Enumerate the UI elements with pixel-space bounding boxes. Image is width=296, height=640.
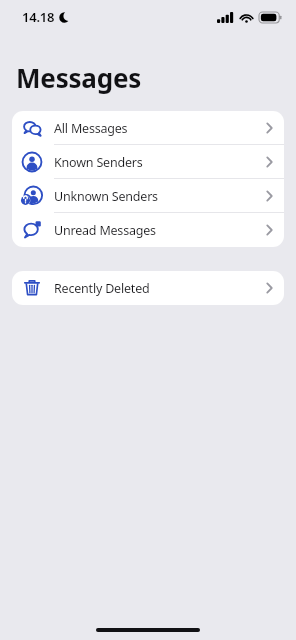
button[interactable]: Unknown Senders — [12, 179, 284, 213]
button[interactable]: All Messages — [12, 111, 284, 145]
button[interactable]: Unread Messages — [12, 213, 284, 247]
button[interactable]: Known Senders — [12, 145, 284, 179]
staticText: Unknown Senders — [54, 188, 158, 205]
staticText: 14.18 — [22, 8, 55, 26]
button[interactable]: Recently Deleted — [12, 271, 284, 305]
staticText: Recently Deleted — [54, 280, 150, 297]
staticText: Messages — [16, 60, 142, 95]
staticText: All Messages — [54, 120, 128, 137]
staticText: Known Senders — [54, 154, 143, 171]
staticText: Unread Messages — [54, 222, 156, 239]
